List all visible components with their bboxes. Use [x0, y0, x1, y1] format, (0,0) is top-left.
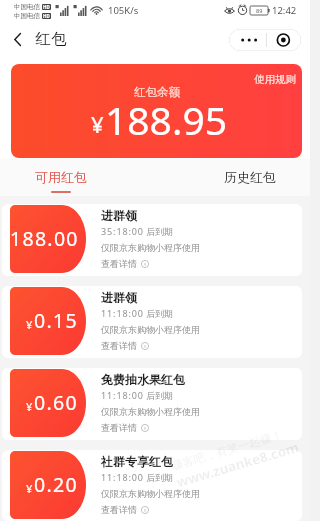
staticText: 0.20: [34, 471, 78, 498]
staticText: 中国电信: [14, 3, 40, 11]
staticText: 35:18:00: [101, 225, 144, 237]
staticText: 红包余额: [134, 85, 180, 99]
staticText: 进群领: [101, 208, 137, 223]
staticText: 查看详情: [101, 340, 137, 351]
staticText: 仅限京东购物小程序使用: [101, 406, 200, 417]
staticText: 中国电信: [14, 12, 40, 20]
button[interactable]: ¥: [2, 368, 302, 440]
staticText: 0.60: [34, 389, 78, 416]
staticText: ¥: [91, 109, 104, 139]
staticText: 11:18:00: [101, 389, 144, 401]
staticText: 后到期: [146, 226, 173, 237]
staticText: www.zuanke8.com: [174, 438, 301, 491]
staticText: 使用规则: [254, 73, 296, 86]
staticText: 查看详情: [101, 422, 137, 433]
button[interactable]: Back: [14, 29, 68, 49]
staticText: 11:18:00: [101, 307, 144, 319]
staticText: 后到期: [146, 390, 173, 401]
button[interactable]: 历史红包: [224, 169, 276, 185]
staticText: 仅限京东购物小程序使用: [101, 324, 200, 335]
other: Back: [14, 33, 21, 46]
staticText: 红包: [35, 29, 68, 49]
staticText: 查看详情: [101, 258, 137, 269]
staticText: 11:18:00: [101, 471, 144, 483]
staticText: 仅限京东购物小程序使用: [101, 242, 200, 253]
staticText: 后到期: [146, 472, 173, 483]
button[interactable]: 可用红包: [35, 169, 87, 193]
button[interactable]: 使用规则: [11, 64, 302, 158]
staticText: 105K/s: [108, 4, 139, 17]
button[interactable]: ¥: [2, 450, 302, 521]
button[interactable]: ¥: [2, 204, 302, 276]
staticText: 0.15: [34, 307, 78, 334]
button[interactable]: Mini program menu: [229, 29, 301, 51]
staticText: 查看详情: [101, 504, 137, 515]
staticText: 历史红包: [224, 169, 276, 185]
staticText: 仅限京东购物小程序使用: [101, 488, 200, 499]
staticText: HD: [43, 13, 50, 19]
staticText: 免费抽水果红包: [101, 372, 185, 387]
staticText: 进群领: [101, 290, 137, 305]
staticText: 可用红包: [35, 169, 87, 185]
staticText: ¥: [26, 317, 33, 332]
staticText: HD: [43, 4, 50, 10]
staticText: ¥: [26, 399, 33, 414]
staticText: 12:42: [272, 4, 297, 17]
button[interactable]: ¥: [2, 286, 302, 358]
staticText: 188.00: [10, 225, 78, 252]
staticText: 赚客吧，有奖一起赚！: [170, 427, 284, 473]
staticText: 社群专享红包: [101, 454, 173, 469]
staticText: 188.95: [105, 93, 227, 146]
staticText: ¥: [26, 481, 33, 496]
staticText: 后到期: [146, 308, 173, 319]
staticText: 89: [256, 7, 263, 14]
